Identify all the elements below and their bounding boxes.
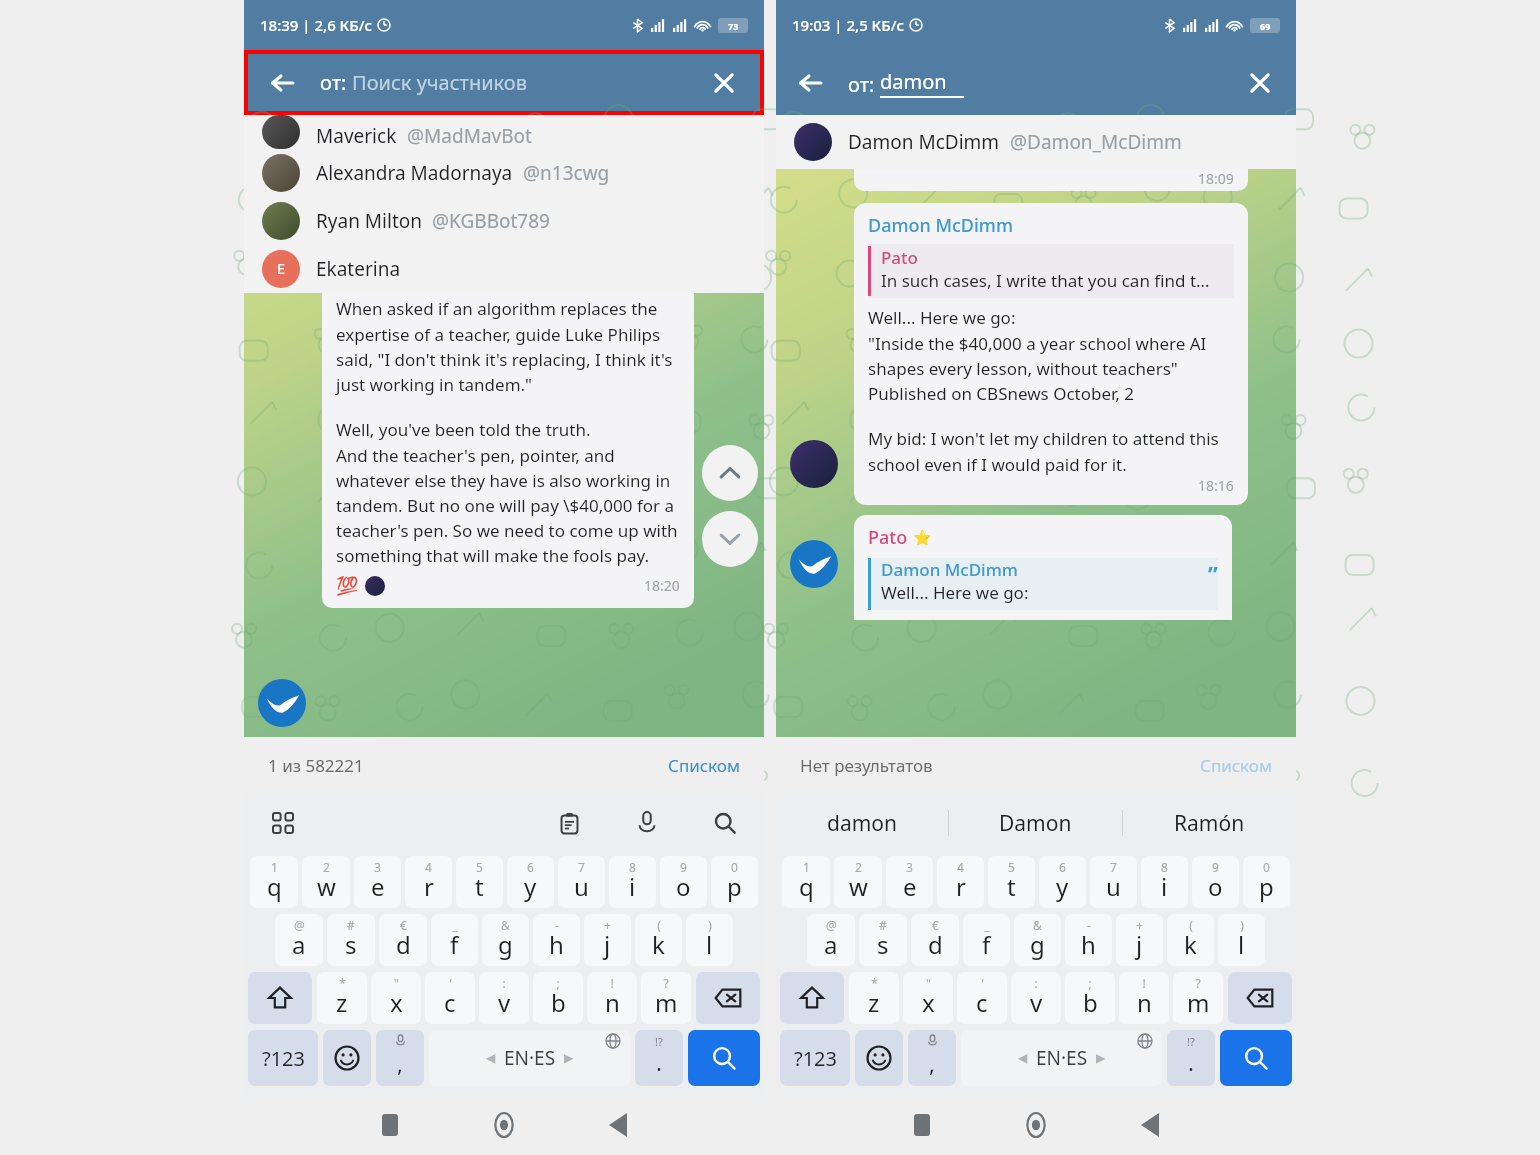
button[interactable]: Search (708, 806, 742, 840)
button[interactable]: 3 (886, 856, 933, 908)
button[interactable]: ! (1119, 972, 1169, 1024)
button[interactable]: , (376, 1030, 424, 1086)
button[interactable]: ) (686, 914, 733, 966)
button[interactable]: Home (1014, 1103, 1058, 1147)
staticText: ' (981, 975, 984, 991)
button[interactable]: _ (431, 914, 478, 966)
button[interactable]: ◀ (429, 1030, 630, 1086)
button[interactable]: € (911, 914, 959, 966)
button[interactable]: Ramón (1123, 793, 1296, 853)
button[interactable]: ? (1173, 972, 1223, 1024)
staticText: € (400, 917, 407, 933)
button[interactable]: & (1014, 914, 1061, 966)
button[interactable]: - (533, 914, 580, 966)
staticText: 9 (1212, 859, 1219, 875)
button[interactable]: damon (776, 793, 948, 853)
button[interactable]: 1 (782, 856, 830, 908)
button[interactable]: ( (635, 914, 682, 966)
button[interactable]: ; (533, 972, 583, 1024)
button[interactable]: 4 (405, 856, 452, 908)
button[interactable]: 2 (834, 856, 882, 908)
button[interactable]: , (908, 1030, 956, 1086)
button[interactable]: Clear (1240, 63, 1280, 103)
button[interactable]: ( (1167, 914, 1214, 966)
button[interactable]: 0 (1243, 856, 1290, 908)
button[interactable]: Back (596, 1103, 640, 1147)
button[interactable]: Home (482, 1103, 526, 1147)
button[interactable]: Keyboard layouts (266, 806, 300, 840)
button[interactable]: Previous result (702, 445, 758, 501)
button[interactable]: Ryan Milton (244, 197, 764, 245)
button[interactable]: Next result (702, 511, 758, 567)
button[interactable]: Back (262, 63, 302, 103)
button[interactable]: ?123 (248, 1030, 318, 1086)
button[interactable]: E (244, 245, 764, 293)
staticText: + (1136, 917, 1143, 933)
button[interactable]: Backspace (1228, 972, 1292, 1024)
button[interactable]: : (479, 972, 529, 1024)
button[interactable]: 6 (1039, 856, 1086, 908)
button[interactable]: 1 (250, 856, 298, 908)
button[interactable]: Search (1220, 1030, 1292, 1086)
staticText: y (1056, 870, 1069, 903)
button[interactable]: * (849, 972, 899, 1024)
button[interactable]: Shift (248, 972, 312, 1024)
button[interactable]: . (1167, 1030, 1215, 1086)
button[interactable]: @ (275, 914, 323, 966)
button[interactable]: & (482, 914, 529, 966)
button[interactable]: ?123 (780, 1030, 850, 1086)
button[interactable]: Emoji (855, 1030, 903, 1086)
button[interactable]: ' (957, 972, 1007, 1024)
button[interactable]: . (635, 1030, 683, 1086)
button[interactable]: 5 (456, 856, 503, 908)
button[interactable]: Damon McDimm (776, 115, 1296, 169)
button[interactable]: + (1116, 914, 1163, 966)
button[interactable]: * (317, 972, 367, 1024)
button[interactable]: 3 (354, 856, 401, 908)
button[interactable]: ; (1065, 972, 1115, 1024)
button[interactable]: 2 (302, 856, 350, 908)
button[interactable]: Clipboard (552, 806, 586, 840)
button[interactable]: # (327, 914, 375, 966)
button[interactable]: Search (688, 1030, 760, 1086)
button[interactable]: ) (1218, 914, 1265, 966)
button[interactable]: 4 (937, 856, 984, 908)
staticText: & (501, 917, 510, 933)
button[interactable]: 9 (1192, 856, 1239, 908)
button[interactable]: ◀ (961, 1030, 1162, 1086)
button[interactable]: Clear (704, 63, 744, 103)
button[interactable]: - (1065, 914, 1112, 966)
button[interactable]: Damon (949, 793, 1122, 853)
button[interactable]: + (584, 914, 631, 966)
button[interactable]: ' (425, 972, 475, 1024)
button[interactable]: " (903, 972, 953, 1024)
button[interactable]: Voice input (630, 806, 664, 840)
button[interactable]: " (371, 972, 421, 1024)
button[interactable]: Списком (668, 754, 740, 777)
button[interactable]: Recents (368, 1103, 412, 1147)
button[interactable]: 8 (1141, 856, 1188, 908)
button[interactable]: 7 (1090, 856, 1137, 908)
button[interactable]: 9 (660, 856, 707, 908)
button[interactable]: Maverick (244, 115, 764, 149)
button[interactable]: 8 (609, 856, 656, 908)
button[interactable]: Back (790, 63, 830, 103)
button[interactable]: 6 (507, 856, 554, 908)
button[interactable]: 0 (711, 856, 758, 908)
button[interactable]: ? (641, 972, 691, 1024)
button[interactable]: Emoji (323, 1030, 371, 1086)
button[interactable]: Списком (1200, 754, 1272, 777)
button[interactable]: @ (807, 914, 855, 966)
button[interactable]: : (1011, 972, 1061, 1024)
button[interactable]: Backspace (696, 972, 760, 1024)
button[interactable]: 7 (558, 856, 605, 908)
button[interactable]: Shift (780, 972, 844, 1024)
button[interactable]: Alexandra Madornaya (244, 149, 764, 197)
button[interactable]: # (859, 914, 907, 966)
button[interactable]: € (379, 914, 427, 966)
button[interactable]: 5 (988, 856, 1035, 908)
button[interactable]: Back (1128, 1103, 1172, 1147)
button[interactable]: Recents (900, 1103, 944, 1147)
button[interactable]: ! (587, 972, 637, 1024)
button[interactable]: _ (963, 914, 1010, 966)
